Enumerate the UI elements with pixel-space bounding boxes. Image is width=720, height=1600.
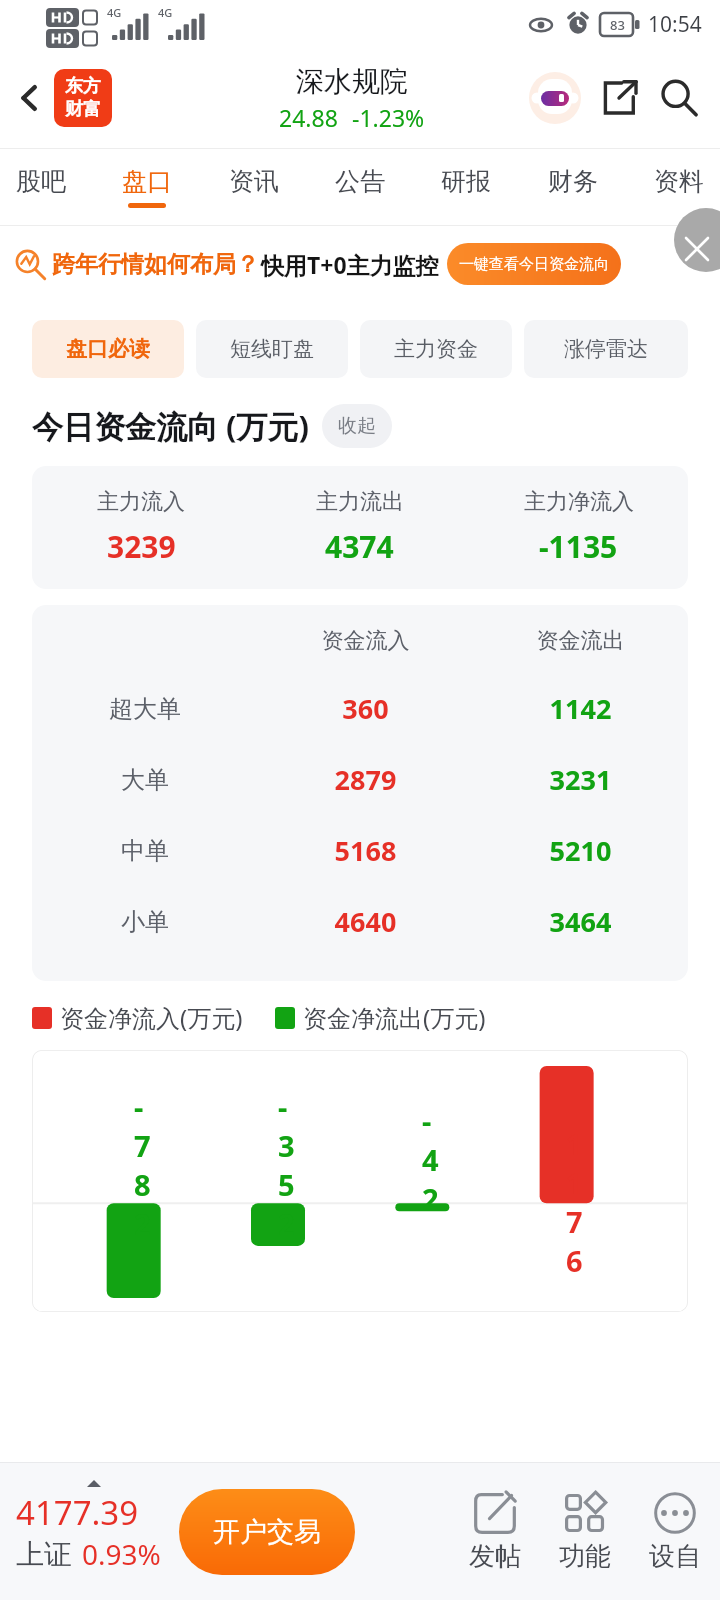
staticText: 东方 <box>65 75 101 98</box>
button[interactable]: Search <box>650 69 708 127</box>
staticText: 上证 <box>16 1537 72 1572</box>
button[interactable]: 主力资金 <box>360 320 512 378</box>
button[interactable]: 主力流入 <box>32 466 688 589</box>
staticText: 发帖 <box>469 1540 521 1573</box>
button[interactable]: 涨停雷达 <box>524 320 688 378</box>
staticText: 4G <box>158 5 173 20</box>
button[interactable]: 盘口必读 <box>32 320 184 378</box>
staticText: 5210 <box>473 832 688 869</box>
button[interactable]: 财务 <box>548 149 598 225</box>
staticText: 主力资金 <box>394 336 478 362</box>
staticText: 中单 <box>121 836 169 866</box>
button[interactable]: 短线盯盘 <box>196 320 348 378</box>
staticText: 开户交易 <box>213 1515 321 1549</box>
staticText: -352 <box>278 1087 279 1243</box>
staticText: 大单 <box>121 765 169 795</box>
button[interactable]: 设自 <box>630 1490 720 1573</box>
staticText: 3464 <box>473 903 688 940</box>
staticText: 深水规院 <box>296 64 408 99</box>
staticText: -782 <box>134 1087 135 1243</box>
staticText: 资金净流出(万元) <box>303 1001 486 1034</box>
staticText: 1142 <box>473 690 688 727</box>
staticText: 0.93% <box>82 1535 161 1573</box>
staticText: 功能 <box>559 1540 611 1573</box>
button[interactable]: 收起 <box>322 404 392 448</box>
staticText: 主力净流入 <box>524 488 634 516</box>
button[interactable]: 东方 <box>54 69 112 127</box>
staticText: 10:54 <box>648 10 702 39</box>
button[interactable]: 研报 <box>441 149 491 225</box>
button[interactable]: 超大单 <box>32 673 688 744</box>
staticText: 24.88 <box>279 102 338 133</box>
staticText: 360 <box>258 690 473 727</box>
staticText: 股吧 <box>16 166 66 197</box>
staticText: 主力流出 <box>316 488 404 516</box>
button[interactable]: 大单 <box>32 744 688 815</box>
staticText: 公告 <box>335 166 385 197</box>
button[interactable]: 4177.39 <box>16 1490 161 1573</box>
button[interactable]: 中单 <box>32 815 688 886</box>
button[interactable]: 小单 <box>32 886 688 957</box>
button[interactable]: 开户交易 <box>179 1489 355 1575</box>
staticText: 2879 <box>258 761 473 798</box>
staticText: 研报 <box>441 166 491 197</box>
staticText: 4G <box>107 5 122 20</box>
staticText: 资讯 <box>229 166 279 197</box>
button[interactable]: 公告 <box>335 149 385 225</box>
staticText: 超大单 <box>109 694 181 724</box>
staticText: 1176 <box>566 1124 567 1280</box>
staticText: 盘口 <box>122 166 172 197</box>
button[interactable]: Share <box>590 69 648 127</box>
staticText: 主力流入 <box>97 488 185 516</box>
staticText: 3239 <box>107 526 176 567</box>
staticText: 收起 <box>338 414 376 438</box>
staticText: -42 <box>422 1101 423 1218</box>
button[interactable]: 股吧 <box>16 149 66 225</box>
staticText: 资金流出 <box>473 627 688 655</box>
staticText: 短线盯盘 <box>230 336 314 362</box>
button[interactable]: 资讯 <box>229 149 279 225</box>
staticText: -1.23% <box>352 102 425 133</box>
button[interactable]: 跨年行情如何布局？ <box>0 226 720 302</box>
staticText: 资金净流入(万元) <box>60 1001 243 1034</box>
staticText: 资料 <box>654 166 704 197</box>
staticText: 盘口必读 <box>66 336 150 362</box>
button[interactable]: 资料 <box>654 149 704 225</box>
staticText: 跨年行情如何布局？ <box>52 250 259 279</box>
staticText: 83 <box>610 16 625 34</box>
staticText: 3231 <box>473 761 688 798</box>
button[interactable]: 发帖 <box>450 1490 540 1573</box>
staticText: 资金流入 <box>258 627 473 655</box>
staticText: 一键查看今日资金流向 <box>459 255 609 274</box>
staticText: 4177.39 <box>16 1490 139 1535</box>
staticText: -1135 <box>539 526 618 567</box>
button[interactable]: 一键查看今日资金流向 <box>447 243 621 285</box>
button[interactable]: Back <box>4 72 56 124</box>
button[interactable]: 盘口 <box>122 149 172 225</box>
staticText: 5168 <box>258 832 473 869</box>
staticText: 快用T+0主力监控 <box>261 249 439 280</box>
staticText: 设自 <box>649 1540 701 1573</box>
staticText: 4640 <box>258 903 473 940</box>
button[interactable]: 功能 <box>540 1490 630 1573</box>
button[interactable]: Close ad <box>674 208 720 272</box>
staticText: 4374 <box>325 526 394 567</box>
staticText: 今日资金流向 (万元) <box>32 405 310 447</box>
staticText: 财富 <box>65 98 101 121</box>
staticText: 财务 <box>548 166 598 197</box>
staticText: 小单 <box>121 907 169 937</box>
staticText: 涨停雷达 <box>564 336 648 362</box>
button[interactable]: AI assistant <box>526 69 584 127</box>
